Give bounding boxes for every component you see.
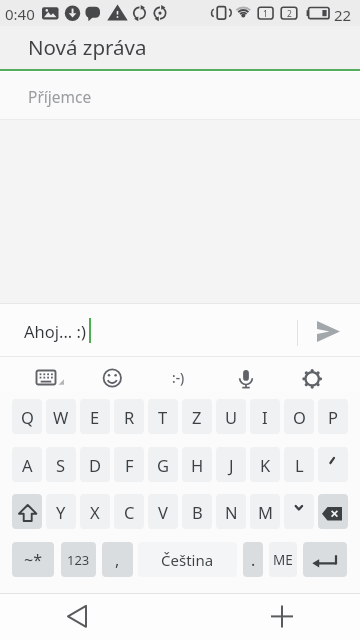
staticText: O — [293, 406, 306, 428]
button[interactable]: A — [12, 447, 42, 482]
button[interactable]: U — [216, 399, 246, 434]
staticText: 123 — [67, 551, 90, 569]
staticText: . — [251, 549, 256, 571]
staticText: S — [56, 454, 66, 476]
staticText: A — [22, 454, 33, 476]
button[interactable]: V — [148, 494, 178, 529]
button[interactable] — [318, 494, 348, 529]
staticText: P — [328, 406, 338, 428]
staticText: U — [225, 406, 238, 428]
staticText: J — [229, 454, 234, 476]
button[interactable]: K — [250, 447, 280, 482]
button[interactable] — [284, 494, 314, 529]
button[interactable]: ~* — [12, 542, 54, 577]
staticText: B — [192, 501, 203, 523]
staticText: W — [53, 406, 69, 428]
button[interactable]: Q — [12, 399, 42, 434]
button[interactable] — [303, 542, 347, 577]
button[interactable]: M — [250, 494, 280, 529]
staticText: T — [158, 406, 168, 428]
staticText: Q — [21, 406, 34, 428]
staticText: Příjemce — [28, 86, 92, 107]
button[interactable]: W — [46, 399, 76, 434]
button[interactable] — [260, 596, 304, 638]
button[interactable]: Čeština — [138, 542, 237, 577]
staticText: Y — [56, 501, 66, 523]
button[interactable]: Z — [182, 399, 212, 434]
button[interactable]: , — [102, 542, 133, 577]
button[interactable] — [96, 360, 130, 395]
button[interactable]: O — [284, 399, 314, 434]
button[interactable] — [0, 72, 360, 119]
button[interactable]: S — [46, 447, 76, 482]
button[interactable] — [226, 360, 260, 395]
button[interactable]: ME — [269, 542, 297, 577]
staticText: D — [89, 454, 102, 476]
button[interactable]: J — [216, 447, 246, 482]
button[interactable]: E — [80, 399, 110, 434]
staticText: Čeština — [161, 550, 214, 570]
staticText: 22 — [334, 5, 352, 25]
staticText: Z — [192, 406, 202, 428]
button[interactable]: R — [114, 399, 144, 434]
staticText: V — [158, 501, 168, 523]
staticText: ~* — [24, 549, 42, 571]
button[interactable]: H — [182, 447, 212, 482]
button[interactable]: Y — [46, 494, 76, 529]
staticText: X — [90, 501, 100, 523]
button[interactable]: N — [216, 494, 246, 529]
staticText: Ahoj... :) — [24, 320, 86, 342]
staticText: H — [191, 454, 204, 476]
staticText: N — [225, 501, 238, 523]
button[interactable]: . — [243, 542, 263, 577]
button[interactable] — [305, 310, 351, 354]
staticText: 0:40 — [5, 4, 35, 24]
button[interactable] — [318, 447, 348, 482]
button[interactable]: X — [80, 494, 110, 529]
button[interactable]: G — [148, 447, 178, 482]
staticText: 1 — [263, 8, 268, 20]
staticText: G — [157, 454, 170, 476]
button[interactable] — [12, 494, 42, 529]
staticText: E — [90, 406, 100, 428]
button[interactable]: F — [114, 447, 144, 482]
staticText: F — [125, 454, 134, 476]
button[interactable]: B — [182, 494, 212, 529]
button[interactable]: 123 — [61, 542, 96, 577]
button[interactable]: D — [80, 447, 110, 482]
staticText: :-) — [172, 369, 185, 387]
button[interactable]: P — [318, 399, 348, 434]
button[interactable] — [29, 360, 65, 395]
button[interactable]: L — [284, 447, 314, 482]
staticText: Nová zpráva — [28, 33, 147, 61]
staticText: 2 — [287, 8, 292, 20]
button[interactable]: T — [148, 399, 178, 434]
staticText: ME — [273, 551, 293, 569]
staticText: I — [262, 406, 268, 428]
button[interactable]: I — [250, 399, 280, 434]
button[interactable]: :-) — [161, 360, 195, 395]
staticText: K — [260, 454, 271, 476]
button[interactable] — [293, 360, 327, 395]
staticText: L — [295, 454, 304, 476]
staticText: R — [124, 406, 135, 428]
button[interactable]: C — [114, 494, 144, 529]
staticText: M — [258, 501, 273, 523]
staticText: C — [124, 501, 135, 523]
staticText: , — [115, 549, 120, 571]
button[interactable] — [55, 596, 99, 638]
